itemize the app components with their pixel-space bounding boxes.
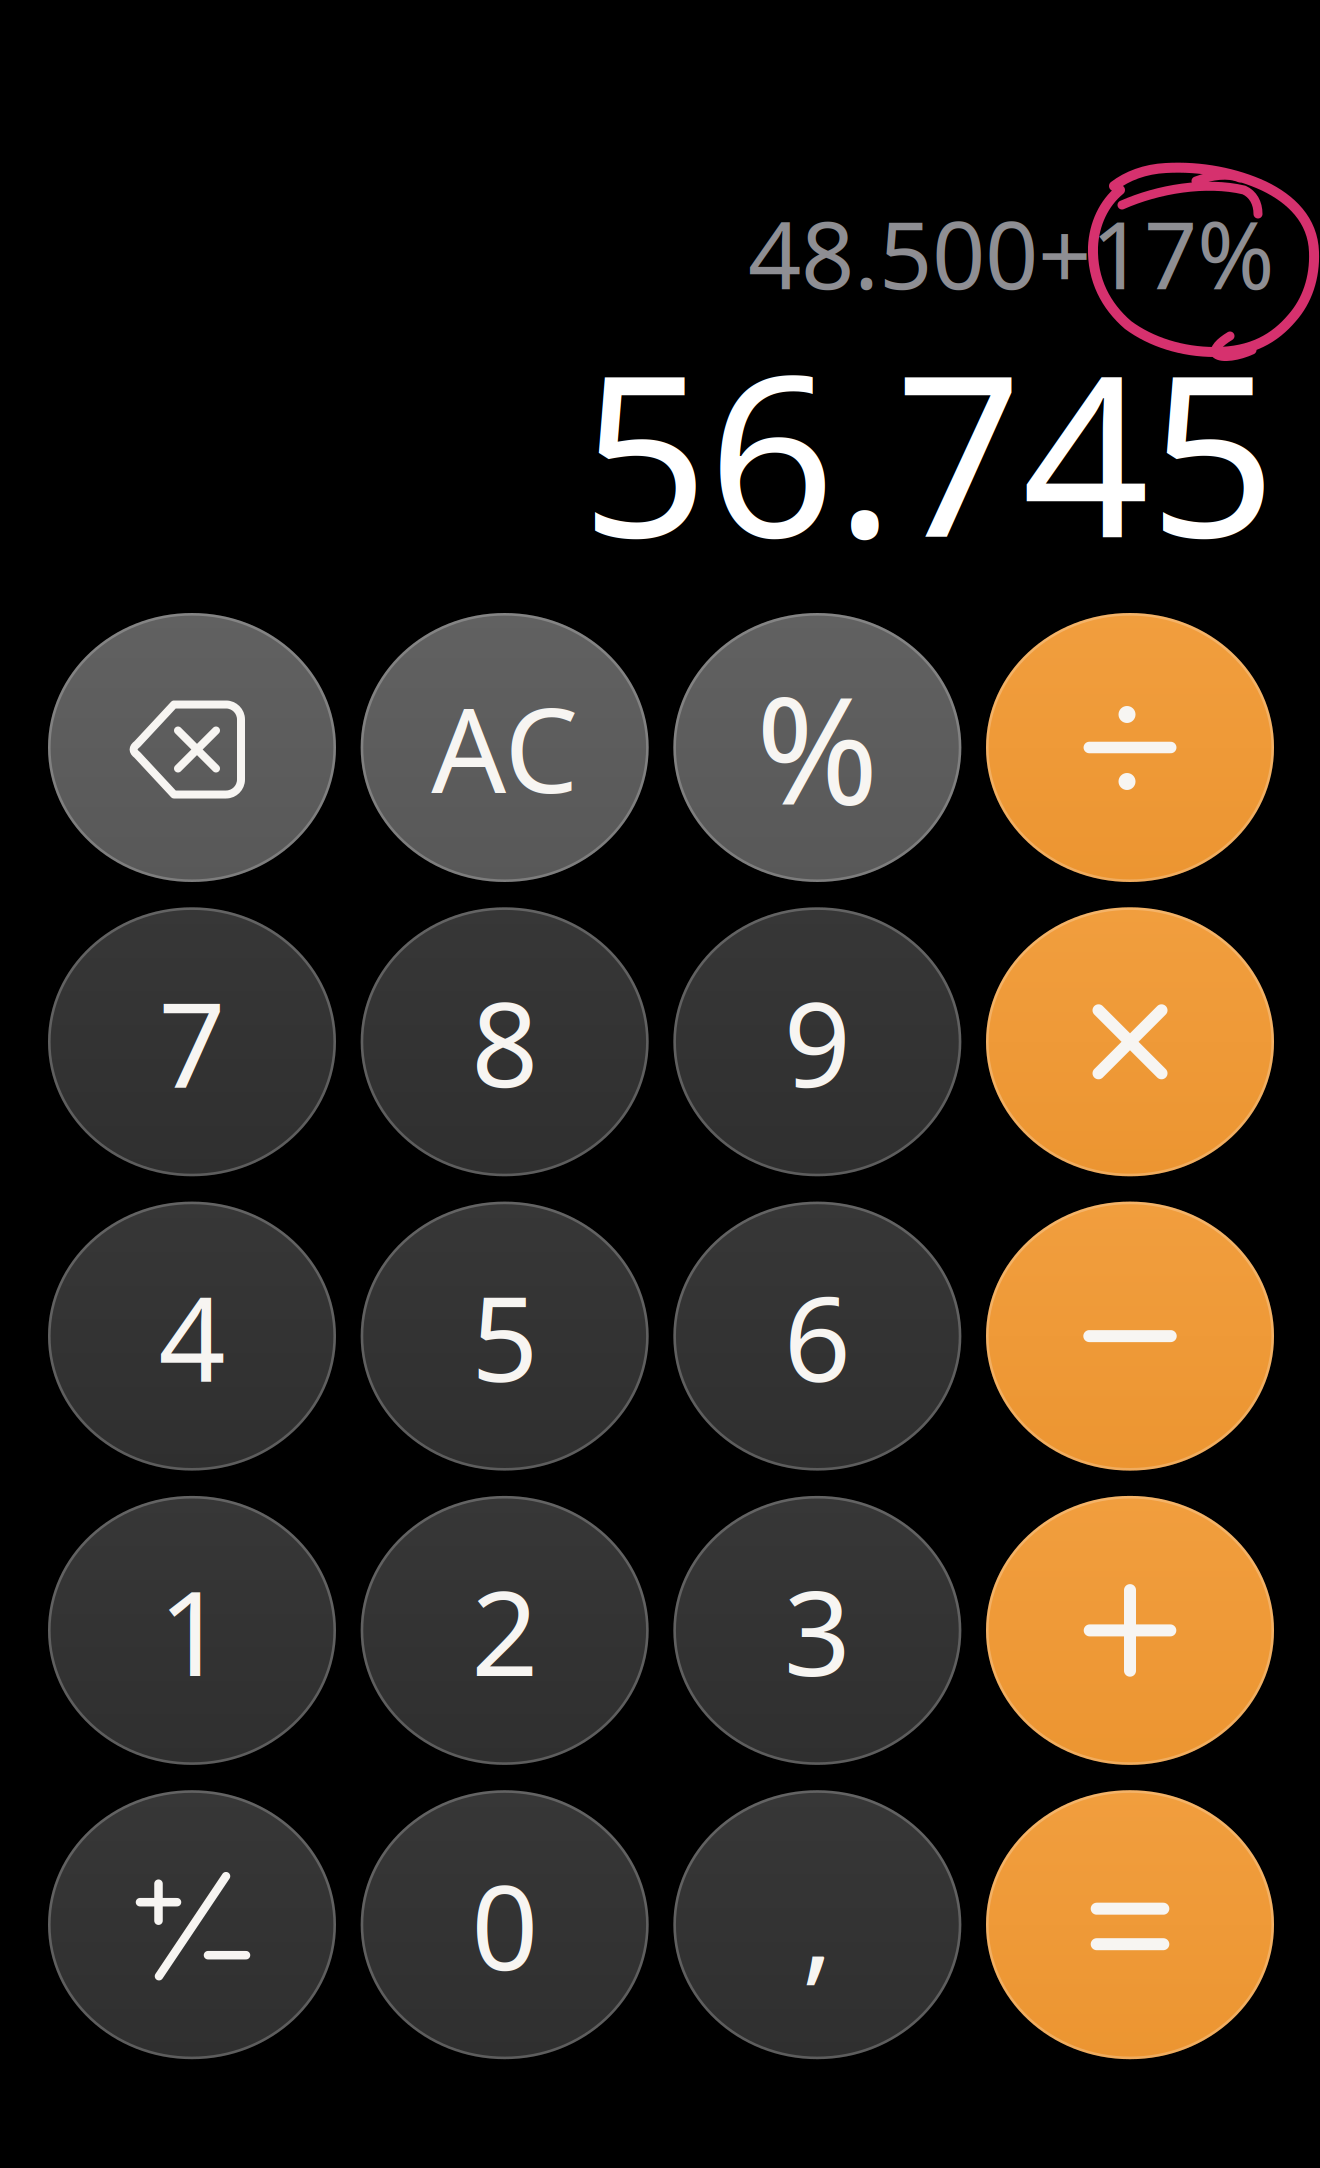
button[interactable]: 3	[673, 1496, 961, 1765]
button[interactable]: 7	[48, 907, 336, 1176]
button[interactable]: %	[673, 613, 961, 882]
button[interactable]: 2	[361, 1496, 649, 1765]
staticText: 5	[471, 1258, 538, 1414]
staticText: 1	[158, 1552, 225, 1708]
staticText: 7	[158, 964, 225, 1120]
button[interactable]: 4	[48, 1202, 336, 1471]
button[interactable]: 9	[673, 907, 961, 1176]
staticText: 3	[784, 1552, 851, 1708]
button[interactable]: Minus	[986, 1202, 1274, 1471]
button[interactable]: Delete	[48, 613, 336, 882]
button[interactable]: 6	[673, 1202, 961, 1471]
button[interactable]: 5	[361, 1202, 649, 1471]
button[interactable]: 0	[361, 1790, 649, 2059]
button[interactable]: Plus	[986, 1496, 1274, 1765]
button[interactable]: Divide	[986, 613, 1274, 882]
staticText: 2	[471, 1552, 538, 1708]
button[interactable]: ,	[673, 1790, 961, 2059]
staticText: 48.500+17%	[748, 191, 1275, 315]
staticText: 4	[158, 1258, 225, 1414]
staticText: 6	[784, 1258, 851, 1414]
staticText: AC	[431, 670, 578, 825]
button[interactable]: 8	[361, 907, 649, 1176]
staticText: %	[756, 649, 879, 846]
button[interactable]: Toggle sign	[48, 1790, 336, 2059]
staticText: 0	[471, 1847, 538, 2003]
staticText: ,	[802, 1847, 833, 2003]
button[interactable]: Equals	[986, 1790, 1274, 2059]
button[interactable]: Multiply	[986, 907, 1274, 1176]
button[interactable]: 1	[48, 1496, 336, 1765]
button[interactable]: AC	[361, 613, 649, 882]
staticText: 9	[784, 964, 851, 1120]
staticText: 8	[471, 964, 538, 1120]
staticText: 56.745	[581, 303, 1276, 599]
